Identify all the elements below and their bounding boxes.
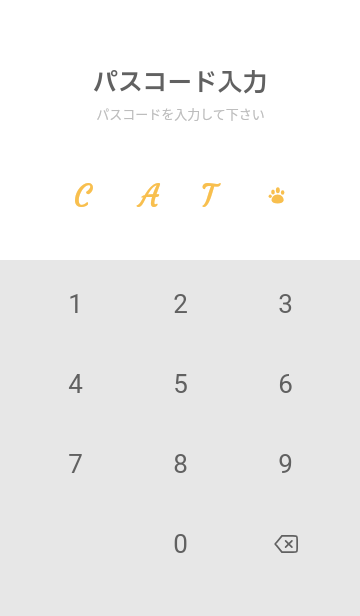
staticText: 6 bbox=[278, 369, 293, 399]
button[interactable]: 6 bbox=[233, 364, 338, 404]
button[interactable]: 7 bbox=[22, 444, 128, 484]
button[interactable]: 2 bbox=[128, 284, 233, 324]
button[interactable]: 3 bbox=[233, 284, 338, 324]
button[interactable]: 1 bbox=[22, 284, 128, 324]
staticText: 3 bbox=[278, 289, 293, 319]
button[interactable]: 0 bbox=[128, 524, 233, 564]
staticText: 4 bbox=[68, 369, 83, 399]
button[interactable]: 8 bbox=[128, 444, 233, 484]
staticText: 0 bbox=[173, 529, 188, 559]
staticText: パスコードを入力して下さい bbox=[96, 104, 265, 123]
staticText: 5 bbox=[173, 369, 188, 399]
staticText: A bbox=[139, 176, 159, 216]
button[interactable]: 9 bbox=[233, 444, 338, 484]
staticText: パスコード入力 bbox=[92, 65, 268, 102]
staticText: C bbox=[73, 176, 91, 216]
staticText: 1 bbox=[68, 289, 83, 319]
staticText: 7 bbox=[68, 449, 83, 479]
staticText: 9 bbox=[278, 449, 293, 479]
button[interactable]: 4 bbox=[22, 364, 128, 404]
button[interactable]: 5 bbox=[128, 364, 233, 404]
button[interactable]: Delete bbox=[233, 524, 338, 564]
staticText: T bbox=[200, 176, 216, 216]
staticText: 2 bbox=[173, 289, 188, 319]
staticText: 8 bbox=[173, 449, 188, 479]
